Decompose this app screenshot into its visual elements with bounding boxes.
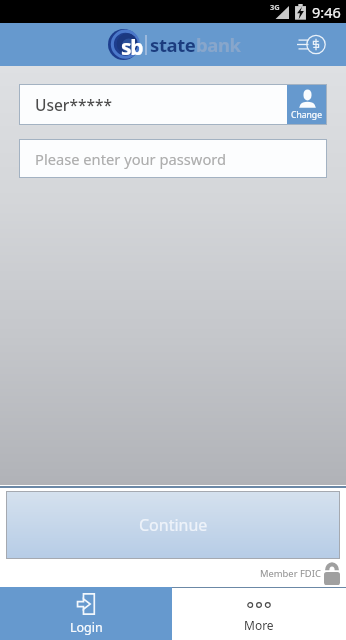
- button[interactable]: Continue: [6, 491, 340, 559]
- button[interactable]: User*****: [19, 84, 327, 125]
- staticText: More: [244, 617, 274, 633]
- staticText: 3G: [270, 2, 280, 12]
- button[interactable]: Login: [0, 587, 172, 640]
- staticText: state: [150, 32, 196, 57]
- button[interactable]: More: [172, 587, 346, 640]
- staticText: User*****: [35, 94, 112, 115]
- staticText: Please enter your password: [35, 149, 227, 169]
- button[interactable]: Please enter your password: [19, 139, 327, 178]
- staticText: bank: [196, 32, 241, 57]
- button[interactable]: Change user: [287, 84, 327, 125]
- button[interactable]: Quick balance: [294, 27, 330, 63]
- staticText: Change: [291, 109, 323, 121]
- staticText: sb: [121, 33, 143, 62]
- staticText: 9:46: [312, 2, 341, 22]
- staticText: Continue: [139, 514, 208, 536]
- staticText: Login: [70, 619, 103, 636]
- staticText: Member FDIC: [260, 567, 321, 580]
